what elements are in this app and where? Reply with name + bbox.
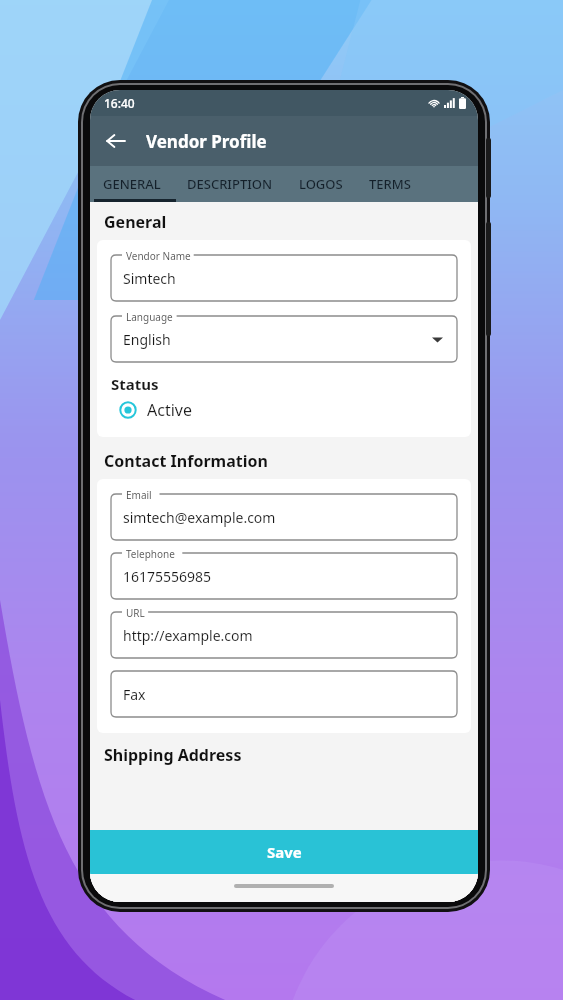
button[interactable]: URL	[111, 612, 457, 658]
staticText: English	[123, 330, 171, 349]
staticText: General	[104, 211, 167, 233]
button[interactable]: Language	[111, 316, 457, 362]
staticText: URL	[126, 606, 145, 620]
staticText: DESCRIPTION	[187, 175, 273, 193]
staticText: LOGOS	[299, 175, 343, 193]
button[interactable]: Vendor Name	[111, 255, 457, 301]
button[interactable]: Fax	[111, 671, 457, 717]
staticText: 16:40	[104, 95, 135, 111]
staticText: Save	[267, 842, 302, 862]
staticText: Telephone	[126, 547, 175, 561]
staticText: Vendor Name	[126, 249, 191, 263]
staticText: Fax	[123, 685, 146, 704]
staticText: Active	[147, 399, 192, 421]
staticText: Contact Information	[104, 450, 268, 472]
staticText: Simtech	[123, 269, 176, 288]
button[interactable]: Save	[90, 830, 478, 874]
button[interactable]: DESCRIPTION	[187, 166, 273, 202]
staticText: GENERAL	[103, 175, 161, 193]
staticText: Email	[126, 488, 152, 502]
staticText: 16175556985	[123, 567, 212, 586]
staticText: TERMS	[369, 175, 411, 193]
staticText: Shipping Address	[104, 744, 242, 766]
button[interactable]: LOGOS	[299, 166, 343, 202]
button[interactable]: Email	[111, 494, 457, 540]
button[interactable]: Active	[119, 399, 192, 421]
staticText: http://example.com	[123, 626, 253, 645]
button[interactable]: Back	[96, 121, 136, 161]
button[interactable]: TERMS	[369, 166, 411, 202]
staticText: Language	[126, 310, 173, 324]
staticText: Status	[111, 374, 159, 394]
staticText: Vendor Profile	[146, 130, 267, 153]
button[interactable]: Telephone	[111, 553, 457, 599]
staticText: simtech@example.com	[123, 508, 276, 527]
button[interactable]: GENERAL	[103, 166, 161, 202]
